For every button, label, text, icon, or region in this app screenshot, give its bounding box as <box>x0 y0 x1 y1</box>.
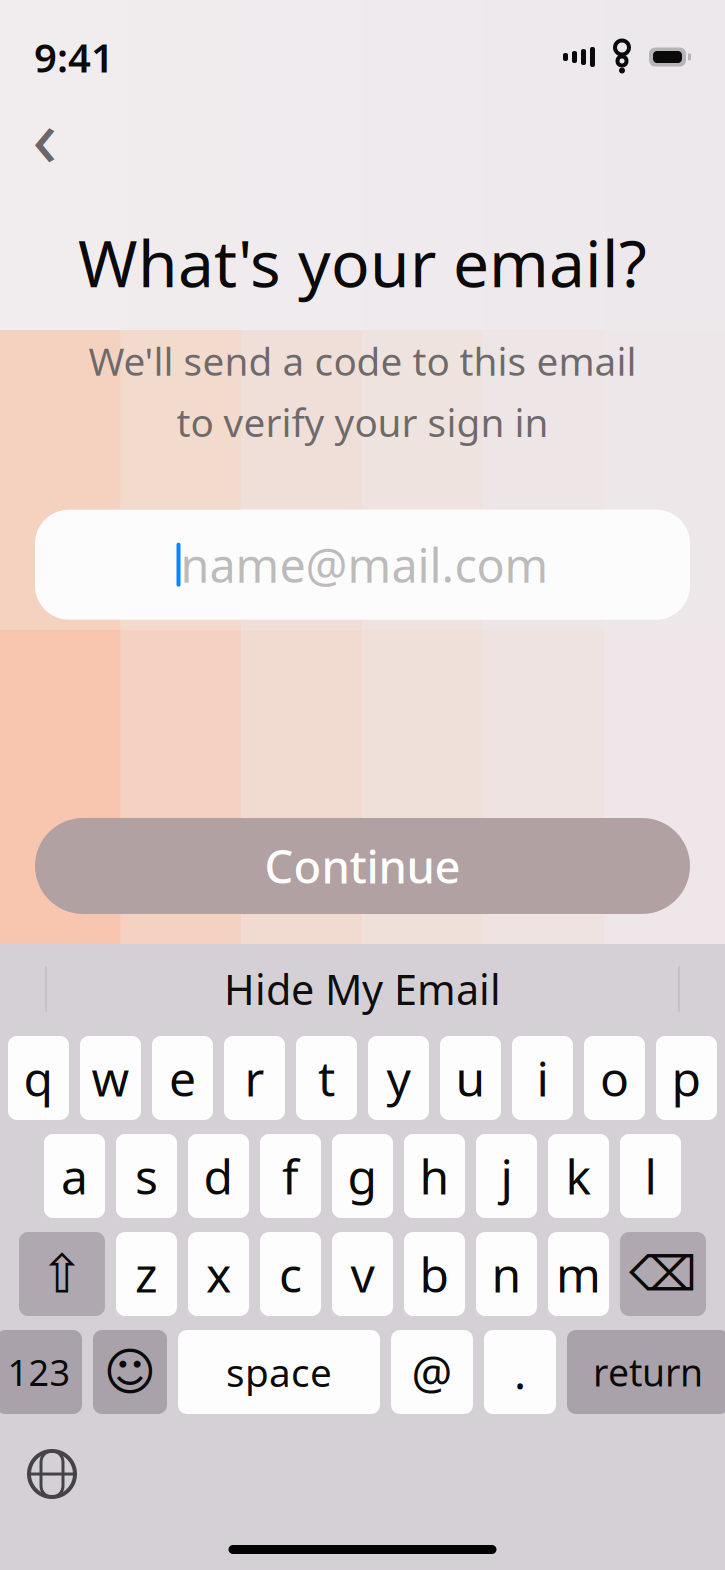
staticText: i <box>536 1046 548 1110</box>
button[interactable]: return <box>567 1330 725 1414</box>
button[interactable]: t <box>296 1036 357 1120</box>
staticText: f <box>282 1144 299 1208</box>
button[interactable]: w <box>80 1036 141 1120</box>
button[interactable]: space <box>178 1330 380 1414</box>
button[interactable]: y <box>368 1036 429 1120</box>
staticText: w <box>91 1046 129 1110</box>
button[interactable]: m <box>548 1232 609 1316</box>
staticText: ⌫ <box>629 1247 697 1301</box>
staticText: c <box>279 1242 302 1306</box>
staticText: k <box>565 1144 591 1208</box>
staticText: What's your email? <box>78 220 647 305</box>
button[interactable]: j <box>476 1134 537 1218</box>
button[interactable]: b <box>404 1232 465 1316</box>
button[interactable]: x <box>188 1232 249 1316</box>
button[interactable]: v <box>332 1232 393 1316</box>
button[interactable]: a <box>44 1134 105 1218</box>
button[interactable]: Hide My Email <box>190 952 535 1026</box>
button[interactable]: Shift <box>19 1232 105 1316</box>
staticText: v <box>350 1242 374 1306</box>
staticText: q <box>23 1046 53 1110</box>
button[interactable]: . <box>484 1330 556 1414</box>
button[interactable]: f <box>260 1134 321 1218</box>
button[interactable]: d <box>188 1134 249 1218</box>
staticText: n <box>491 1242 521 1306</box>
button[interactable]: r <box>224 1036 285 1120</box>
staticText: ⇧ <box>39 1244 84 1304</box>
button[interactable]: g <box>332 1134 393 1218</box>
staticText: Continue <box>264 836 460 896</box>
staticText: t <box>318 1046 335 1110</box>
staticText: Hide My Email <box>224 962 501 1016</box>
staticText: z <box>135 1242 158 1306</box>
staticText: u <box>455 1046 485 1110</box>
staticText: p <box>671 1046 701 1110</box>
staticText: m <box>556 1242 601 1306</box>
button[interactable]: c <box>260 1232 321 1316</box>
button[interactable]: o <box>584 1036 645 1120</box>
staticText: space <box>226 1346 332 1398</box>
staticText: o <box>600 1046 629 1110</box>
button[interactable]: h <box>404 1134 465 1218</box>
staticText: d <box>203 1144 233 1208</box>
button[interactable]: Delete <box>620 1232 706 1316</box>
staticText: y <box>386 1046 410 1110</box>
staticText: b <box>419 1242 449 1306</box>
staticText: return <box>593 1347 703 1397</box>
staticText: name@mail.com <box>180 534 548 596</box>
button[interactable]: Continue <box>0 818 725 944</box>
button[interactable]: z <box>116 1232 177 1316</box>
staticText: x <box>206 1242 231 1306</box>
staticText: a <box>61 1144 88 1208</box>
button[interactable]: k <box>548 1134 609 1218</box>
button[interactable]: n <box>476 1232 537 1316</box>
staticText: @ <box>411 1342 452 1402</box>
staticText: ☺ <box>103 1343 156 1401</box>
button[interactable]: @ <box>391 1330 473 1414</box>
button[interactable]: Back <box>16 106 74 164</box>
button[interactable]: l <box>620 1134 681 1218</box>
button[interactable]: Change keyboard <box>20 1442 84 1506</box>
button[interactable]: i <box>512 1036 573 1120</box>
button[interactable]: u <box>440 1036 501 1120</box>
staticText: l <box>644 1144 656 1208</box>
staticText: ‹ <box>32 80 58 190</box>
button[interactable]: name@mail.com <box>0 448 725 620</box>
staticText: s <box>135 1144 158 1208</box>
staticText: 123 <box>7 1348 70 1396</box>
button[interactable]: q <box>8 1036 69 1120</box>
staticText: j <box>500 1144 512 1208</box>
staticText: 9:41 <box>34 30 114 83</box>
staticText: . <box>514 1342 526 1402</box>
button[interactable]: e <box>152 1036 213 1120</box>
staticText: e <box>169 1046 196 1110</box>
button[interactable]: s <box>116 1134 177 1218</box>
staticText: r <box>244 1046 264 1110</box>
staticText: We'll send a code to this email <box>88 335 636 386</box>
button[interactable]: p <box>656 1036 717 1120</box>
staticText: to verify your sign in <box>176 396 548 448</box>
staticText: h <box>419 1144 449 1208</box>
button[interactable]: Emoji <box>93 1330 167 1414</box>
staticText: g <box>347 1144 377 1208</box>
button[interactable]: 123 <box>0 1330 82 1414</box>
